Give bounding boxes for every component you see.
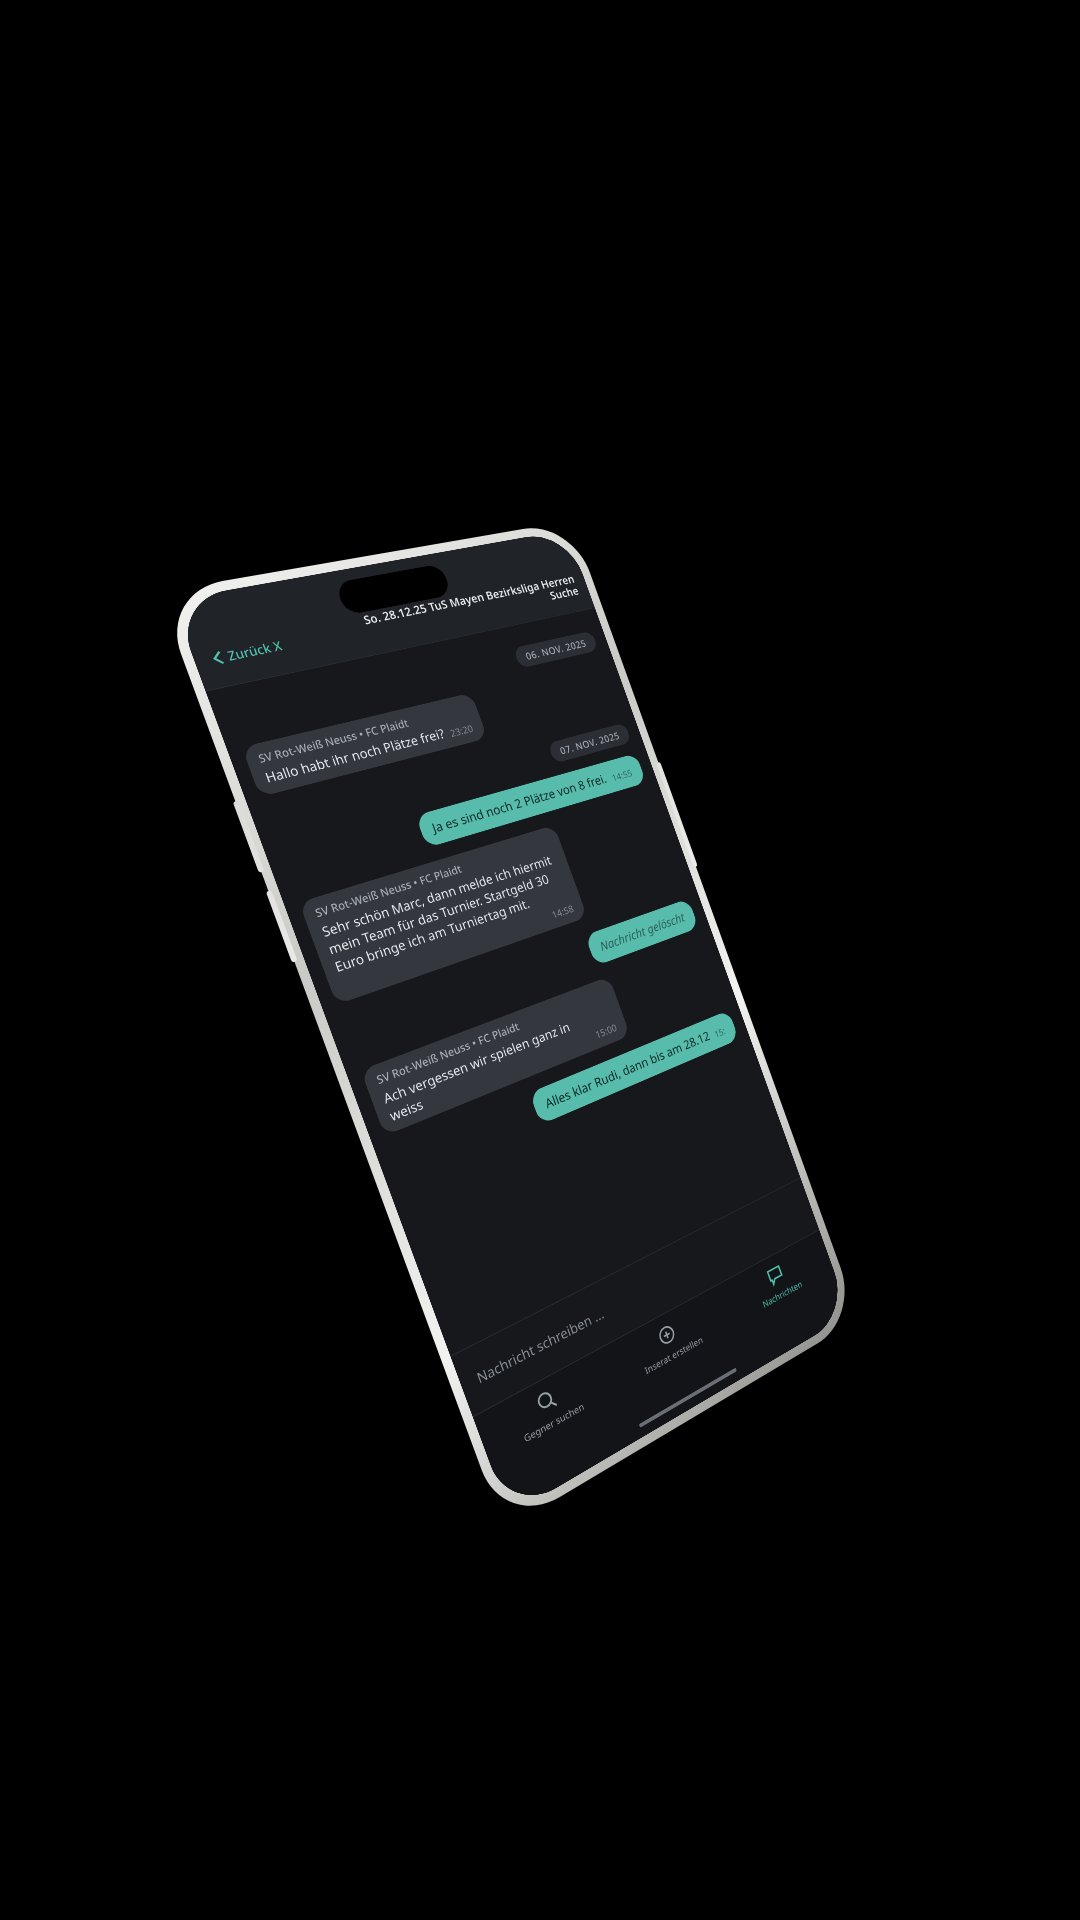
staticText: SV Rot-Weiß Neuss • FC Plaidt bbox=[313, 861, 464, 920]
button[interactable]: Gegner suchen bbox=[473, 1348, 628, 1493]
button[interactable]: Zurück X bbox=[201, 631, 293, 672]
button[interactable]: Nachrichten bbox=[716, 1230, 843, 1354]
button[interactable]: Alles klar Rudi, dann bis am 28.12 bbox=[529, 1010, 739, 1125]
staticText: 06. NOV. 2025 bbox=[524, 636, 589, 663]
staticText: Alles klar Rudi, dann bis am 28.12 bbox=[543, 1027, 712, 1112]
button[interactable]: SV Rot-Weiß Neuss • FC Plaidt bbox=[242, 692, 488, 797]
button[interactable]: SV Rot-Weiß Neuss • FC Plaidt bbox=[360, 976, 631, 1136]
staticText: Zurück X bbox=[225, 636, 285, 664]
button[interactable]: Inserat erstellen bbox=[601, 1286, 741, 1420]
staticText: SV Rot-Weiß Neuss • FC Plaidt bbox=[374, 1019, 521, 1087]
staticText: Sehr schön Marc, dann melde ich hiermit … bbox=[319, 850, 570, 976]
staticText: Gegner suchen bbox=[521, 1399, 586, 1445]
staticText: Ach vergessen wir spielen ganz in weiss bbox=[381, 1012, 593, 1124]
staticText: 15: bbox=[713, 1024, 727, 1041]
button[interactable]: Ja es sind noch 2 Plätze von 8 frei. bbox=[415, 753, 647, 848]
staticText: 15:00 bbox=[594, 1021, 619, 1041]
button[interactable]: SV Rot-Weiß Neuss • FC Plaidt bbox=[299, 825, 588, 1005]
staticText: 14:58 bbox=[550, 902, 576, 921]
staticText: Hallo habt ihr noch Plätze frei? bbox=[263, 725, 447, 787]
button[interactable]: Nachricht schreiben ... bbox=[451, 1178, 819, 1416]
staticText: Nachricht schreiben ... bbox=[474, 1303, 607, 1388]
staticText: 23:20 bbox=[448, 722, 475, 740]
staticText: Nachrichten bbox=[761, 1277, 804, 1310]
staticText: Inserat erstellen bbox=[643, 1333, 704, 1376]
button[interactable]: Nachricht gelöscht bbox=[585, 898, 699, 966]
staticText: SV Rot-Weiß Neuss • FC Plaidt bbox=[256, 715, 411, 766]
staticText: 07. NOV. 2025 bbox=[558, 728, 622, 757]
staticText: 14:55 bbox=[610, 767, 634, 784]
staticText: So. 28.12.25 TuS Mayen Bezirksliga Herre… bbox=[346, 571, 581, 644]
staticText: Nachricht gelöscht bbox=[597, 909, 687, 955]
staticText: Ja es sind noch 2 Plätze von 8 frei. bbox=[429, 770, 609, 837]
